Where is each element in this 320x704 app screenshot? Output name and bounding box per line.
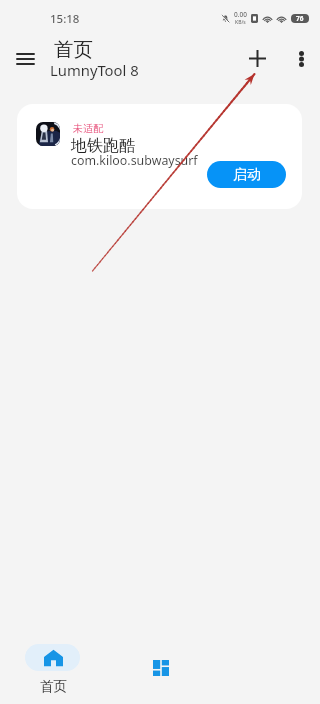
staticText: 76	[296, 14, 304, 23]
staticText: 启动	[233, 166, 261, 184]
staticText: 首页	[40, 678, 67, 695]
button[interactable]: Menu	[5, 39, 45, 79]
staticText: 15:18	[50, 11, 80, 27]
staticText: 地铁跑酷	[71, 136, 135, 156]
staticText: 0.00	[234, 10, 247, 19]
button[interactable]: 启动	[207, 161, 286, 188]
button[interactable]: More options	[281, 39, 320, 79]
staticText: com.kiloo.subwaysurf	[71, 152, 198, 169]
button[interactable]: 首页	[25, 644, 80, 695]
staticText: KB/s	[235, 19, 246, 26]
staticText: 首页	[54, 37, 93, 62]
button[interactable]: Add	[237, 38, 277, 78]
staticText: 未适配	[73, 122, 103, 135]
button[interactable]: 未适配	[17, 104, 302, 209]
button[interactable]: Apps	[131, 654, 190, 681]
staticText: LumnyTool 8	[50, 60, 139, 80]
